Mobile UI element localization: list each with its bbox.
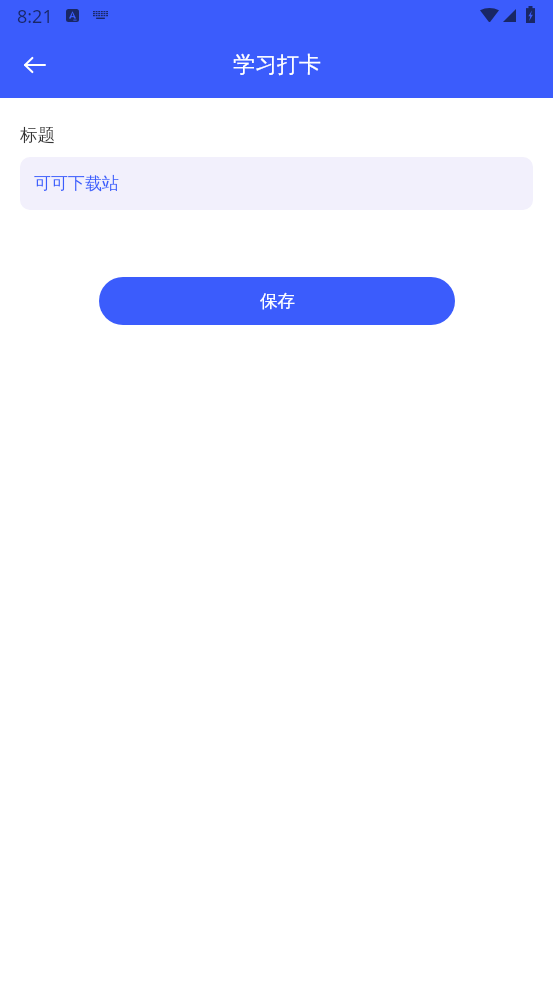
staticText: 标题: [20, 124, 55, 146]
staticText: 学习打卡: [233, 51, 321, 79]
button[interactable]: Back: [13, 43, 57, 87]
staticText: 可可下载站: [34, 173, 119, 194]
staticText: 保存: [260, 290, 295, 312]
button[interactable]: 保存: [99, 277, 455, 325]
button[interactable]: 可可下载站: [20, 157, 533, 210]
staticText: 8:21: [17, 4, 53, 29]
